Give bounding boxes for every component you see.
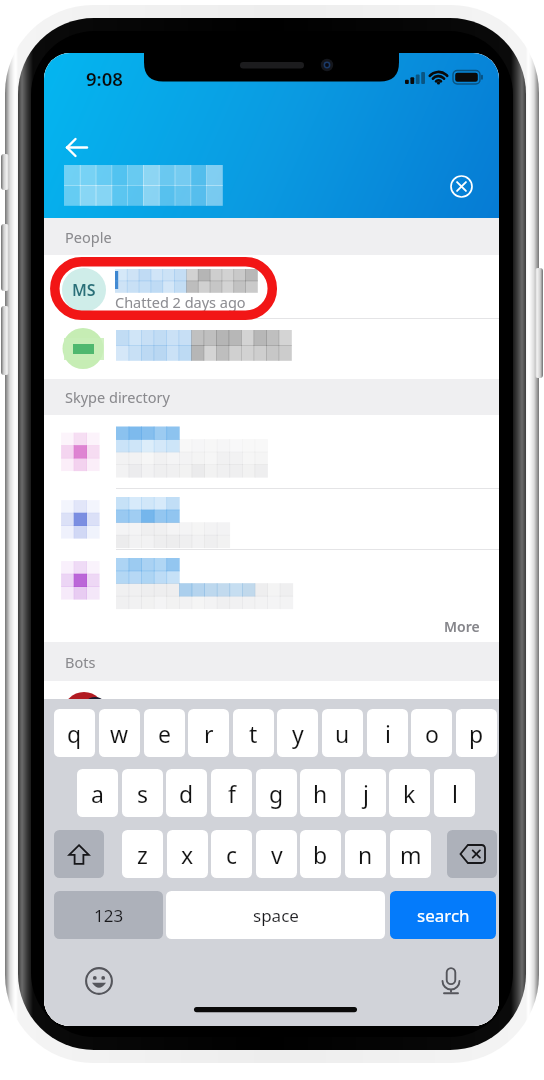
- staticText: MS: [72, 279, 96, 301]
- staticText: search: [417, 904, 470, 927]
- button[interactable]: x: [167, 830, 208, 878]
- button[interactable]: [44, 415, 499, 488]
- button[interactable]: o: [411, 709, 452, 757]
- button[interactable]: r: [188, 709, 229, 757]
- staticText: People: [65, 227, 112, 247]
- button[interactable]: Emoji keyboard: [81, 963, 117, 999]
- button[interactable]: t: [233, 709, 274, 757]
- button[interactable]: d: [166, 769, 207, 817]
- staticText: m: [400, 839, 422, 870]
- staticText: 9:08: [86, 66, 123, 91]
- button[interactable]: v: [256, 830, 297, 878]
- staticText: g: [269, 778, 284, 809]
- button[interactable]: q: [54, 709, 95, 757]
- button[interactable]: a: [77, 769, 118, 817]
- staticText: x: [181, 839, 194, 870]
- button[interactable]: y: [277, 709, 318, 757]
- button[interactable]: w: [99, 709, 140, 757]
- button[interactable]: j: [345, 769, 386, 817]
- staticText: h: [313, 778, 328, 809]
- button[interactable]: f: [211, 769, 252, 817]
- staticText: Skype directory: [65, 387, 170, 407]
- button[interactable]: k: [389, 769, 430, 817]
- staticText: b: [313, 839, 328, 870]
- button[interactable]: c: [211, 830, 252, 878]
- staticText: c: [226, 839, 238, 870]
- button[interactable]: b: [300, 830, 341, 878]
- button[interactable]: m: [390, 830, 431, 878]
- button[interactable]: Shift: [54, 830, 104, 878]
- staticText: r: [204, 718, 214, 749]
- staticText: y: [292, 718, 304, 749]
- staticText: o: [425, 718, 439, 749]
- button[interactable]: i: [367, 709, 408, 757]
- staticText: s: [137, 778, 149, 809]
- staticText: space: [253, 904, 299, 927]
- staticText: l: [452, 778, 458, 809]
- staticText: f: [228, 778, 236, 809]
- button[interactable]: [44, 489, 499, 549]
- button[interactable]: e: [144, 709, 185, 757]
- button[interactable]: n: [345, 830, 386, 878]
- staticText: Bots: [65, 652, 96, 672]
- staticText: z: [137, 839, 148, 870]
- staticText: p: [469, 718, 484, 749]
- staticText: d: [179, 778, 194, 809]
- staticText: n: [358, 839, 373, 870]
- button[interactable]: search: [390, 891, 496, 939]
- button[interactable]: [44, 319, 499, 379]
- staticText: j: [363, 778, 369, 809]
- button[interactable]: [44, 550, 499, 610]
- button[interactable]: Dictation: [433, 963, 469, 999]
- button[interactable]: Clear search: [439, 164, 483, 208]
- button[interactable]: u: [322, 709, 363, 757]
- button[interactable]: More: [430, 611, 499, 642]
- staticText: u: [335, 718, 350, 749]
- button[interactable]: Back: [55, 124, 99, 168]
- button[interactable]: g: [256, 769, 297, 817]
- staticText: k: [403, 778, 416, 809]
- button[interactable]: Backspace: [447, 830, 497, 878]
- button[interactable]: 123: [54, 891, 163, 939]
- staticText: e: [158, 718, 171, 749]
- button[interactable]: h: [300, 769, 341, 817]
- button[interactable]: MS: [44, 255, 499, 318]
- staticText: a: [91, 778, 104, 809]
- button[interactable]: p: [456, 709, 497, 757]
- button[interactable]: s: [122, 769, 163, 817]
- button[interactable]: space: [166, 891, 385, 939]
- staticText: v: [271, 839, 283, 870]
- button[interactable]: l: [434, 769, 475, 817]
- staticText: q: [67, 718, 82, 749]
- staticText: t: [249, 718, 258, 749]
- staticText: 123: [94, 904, 124, 927]
- button[interactable]: z: [122, 830, 163, 878]
- staticText: i: [385, 718, 391, 749]
- button[interactable]: [44, 681, 499, 721]
- staticText: w: [110, 718, 129, 749]
- staticText: Chatted 2 days ago: [115, 292, 246, 312]
